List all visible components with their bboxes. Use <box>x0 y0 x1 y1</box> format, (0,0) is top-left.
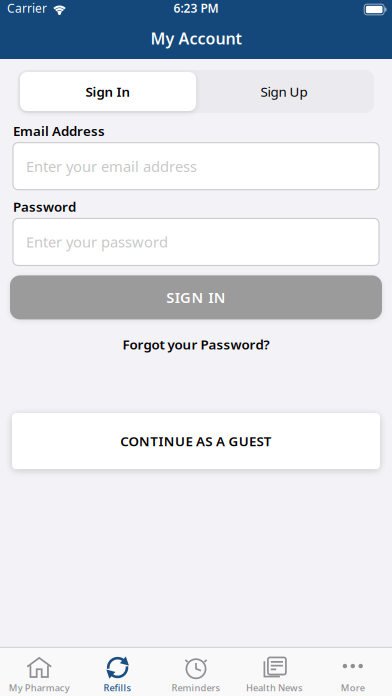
button[interactable]: Health News <box>235 650 314 694</box>
button[interactable]: My Pharmacy <box>0 650 78 694</box>
staticText: Reminders <box>171 682 220 694</box>
staticText: Health News <box>246 682 303 694</box>
button[interactable]: CONTINUE AS A GUEST <box>0 413 392 469</box>
staticText: My Account <box>150 28 241 49</box>
button[interactable]: Reminders <box>157 650 235 694</box>
staticText: Enter your email address <box>26 156 197 176</box>
staticText: 6:23 PM <box>173 0 218 16</box>
staticText: Forgot your Password? <box>122 335 269 353</box>
staticText: CONTINUE AS A GUEST <box>120 432 272 450</box>
staticText: Sign In <box>85 83 130 100</box>
staticText: Sign Up <box>260 83 307 100</box>
button[interactable]: SIGN IN <box>0 275 392 319</box>
staticText: Refills <box>104 682 132 694</box>
staticText: My Pharmacy <box>9 682 70 694</box>
staticText: Password <box>13 198 76 215</box>
staticText: More <box>341 682 365 694</box>
button[interactable]: Refills <box>78 650 157 694</box>
button[interactable]: Sign Up <box>196 72 372 111</box>
button[interactable]: Sign In <box>20 72 196 111</box>
staticText: Email Address <box>13 122 105 140</box>
staticText: Carrier <box>7 0 47 16</box>
staticText: Enter your password <box>26 232 168 252</box>
button[interactable]: Forgot your Password? <box>122 335 269 353</box>
button[interactable]: More <box>314 650 392 694</box>
staticText: SIGN IN <box>166 288 226 307</box>
